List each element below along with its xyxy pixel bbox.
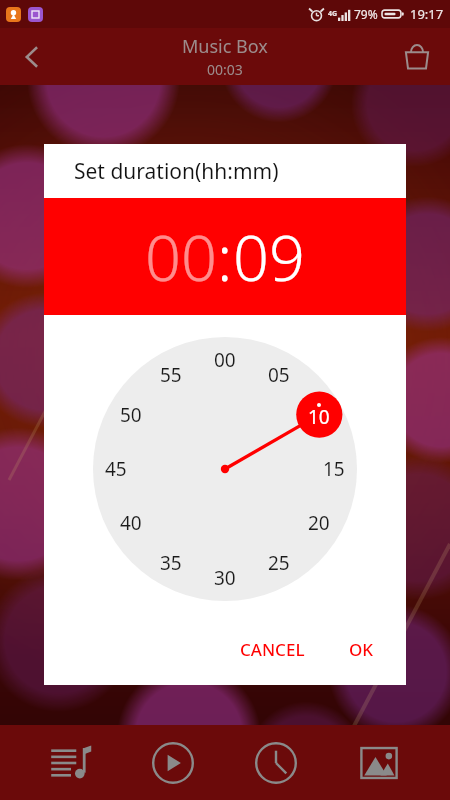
staticText: 45 [105,456,127,482]
staticText: 35 [160,550,182,576]
staticText: 55 [160,362,182,388]
staticText: 50 [120,402,142,428]
staticText: 25 [268,550,290,576]
button[interactable]: Timer [224,725,327,800]
staticText: 4G [328,9,338,19]
staticText: 19:17 [410,5,444,23]
button[interactable]: Back [8,33,56,81]
staticText: Set duration(hh:mm) [74,157,279,186]
staticText: 10 [308,404,330,430]
staticText: 00:03 [207,60,243,79]
staticText: 00 [214,347,236,373]
staticText: 30 [214,565,236,591]
staticText: CANCEL [240,638,305,661]
staticText: Music Box [182,34,268,59]
staticText: 20 [308,510,330,536]
staticText: 40 [120,510,142,536]
button[interactable]: Gallery [327,725,430,800]
button[interactable]: 00 [145,214,217,300]
staticText: : [217,214,233,300]
button[interactable]: Shop [394,34,440,80]
button[interactable]: 00 [93,337,357,601]
staticText: OK [349,638,374,661]
staticText: 05 [268,362,290,388]
staticText: 79% [354,6,378,22]
staticText: 15 [323,456,345,482]
button[interactable]: Playlist [20,725,122,800]
button[interactable]: 09 [233,214,305,300]
button[interactable]: OK [335,630,388,669]
button[interactable]: CANCEL [226,630,319,669]
button[interactable]: Play [122,725,224,800]
